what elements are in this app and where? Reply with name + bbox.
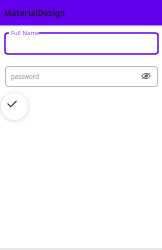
button[interactable] [5,33,158,54]
button[interactable]: password [5,66,158,87]
staticText: password [11,72,40,80]
button[interactable]: Toggle password visibility [140,70,151,81]
button[interactable]: Confirm [1,93,28,120]
staticText: MaterialDesign [4,7,66,18]
staticText: Full Name [11,29,40,37]
